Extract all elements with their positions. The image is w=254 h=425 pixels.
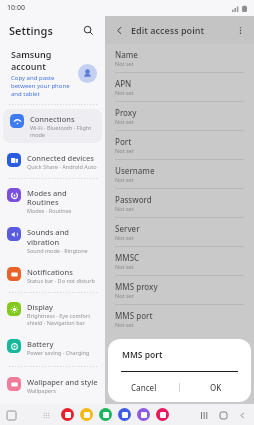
button[interactable]: Name xyxy=(105,44,254,72)
staticText: Not set xyxy=(115,118,134,125)
staticText: Not set xyxy=(115,263,134,270)
staticText: MMSC xyxy=(115,252,140,263)
button[interactable]: Cancel xyxy=(108,378,179,396)
button[interactable]: Back xyxy=(235,408,249,422)
button[interactable]: APN xyxy=(105,73,254,101)
button[interactable]: App xyxy=(118,408,131,421)
staticText: Status bar · Do not disturb xyxy=(27,277,96,284)
staticText: Copy and paste xyxy=(11,74,55,82)
staticText: Wallpaper and style xyxy=(27,377,98,387)
button[interactable]: Recent app xyxy=(5,409,17,421)
staticText: Password xyxy=(115,194,152,205)
staticText: Server xyxy=(115,223,140,234)
staticText: MMS proxy xyxy=(115,281,158,292)
button[interactable]: App xyxy=(99,408,112,421)
button[interactable]: App xyxy=(61,408,74,421)
staticText: Name xyxy=(115,49,138,60)
staticText: 10:00 xyxy=(7,3,25,13)
button[interactable]: MMSC xyxy=(105,247,254,275)
staticText: Power saving · Charging xyxy=(27,349,90,356)
button[interactable]: More options xyxy=(232,22,248,38)
staticText: Wi-Fi · Bluetooth · Flight xyxy=(30,124,92,131)
staticText: and tablet xyxy=(11,90,40,98)
button[interactable]: App xyxy=(137,408,150,421)
staticText: MMS port xyxy=(122,349,163,361)
staticText: Brightness · Eye comfort xyxy=(27,312,91,319)
staticText: vibration xyxy=(27,237,60,247)
staticText: Sound mode · Ringtone xyxy=(27,247,88,254)
staticText: OK xyxy=(210,382,222,393)
staticText: Connections xyxy=(30,114,75,124)
staticText: Modes and Routines xyxy=(27,188,100,207)
staticText: Username xyxy=(115,165,155,176)
staticText: MMS port xyxy=(115,310,153,321)
button[interactable]: App xyxy=(156,408,169,421)
button[interactable]: Proxy xyxy=(105,102,254,130)
staticText: Not set xyxy=(115,147,134,154)
staticText: Not set xyxy=(115,321,134,328)
button[interactable]: Username xyxy=(105,160,254,188)
button[interactable]: Sounds and xyxy=(0,222,105,259)
staticText: Modes · Routines xyxy=(27,207,72,214)
button[interactable]: Server xyxy=(105,218,254,246)
button[interactable]: Home xyxy=(216,408,230,422)
staticText: Edit access point xyxy=(131,24,205,36)
button[interactable]: Password xyxy=(105,189,254,217)
button[interactable]: Port xyxy=(105,131,254,159)
button[interactable]: Notifications xyxy=(0,262,105,289)
staticText: Battery xyxy=(27,339,54,349)
staticText: Wallpapers xyxy=(27,387,56,394)
button[interactable]: Wallpaper and style xyxy=(0,372,105,399)
button[interactable]: Battery xyxy=(0,334,105,361)
staticText: shield · Navigation bar xyxy=(27,319,85,326)
button[interactable]: MMS port xyxy=(105,305,254,333)
staticText: Display xyxy=(27,302,54,312)
button[interactable]: OK xyxy=(180,378,251,396)
staticText: Notifications xyxy=(27,267,73,277)
staticText: Port xyxy=(115,136,132,147)
button[interactable]: Recents xyxy=(197,408,211,422)
staticText: Not set xyxy=(115,234,134,241)
staticText: Sounds and xyxy=(27,227,69,237)
button[interactable]: Modes and Routines xyxy=(0,183,105,219)
button[interactable]: App xyxy=(80,408,93,421)
staticText: Not set xyxy=(115,176,134,183)
button[interactable]: MMS proxy xyxy=(105,276,254,304)
staticText: mode xyxy=(30,131,45,138)
staticText: Connected devices xyxy=(27,153,94,163)
staticText: Not set xyxy=(115,205,134,212)
staticText: Quick Share · Android Auto xyxy=(27,163,97,170)
button[interactable]: Display xyxy=(0,297,105,331)
staticText: Settings xyxy=(9,23,53,38)
button[interactable]: Search xyxy=(79,21,97,39)
button[interactable]: Connections xyxy=(3,109,102,143)
staticText: Not set xyxy=(115,60,134,67)
staticText: between your phone xyxy=(11,82,70,90)
button[interactable]: Samsung xyxy=(0,44,105,104)
staticText: Not set xyxy=(115,89,134,96)
staticText: Samsung xyxy=(11,48,52,60)
button[interactable]: Connected devices xyxy=(0,148,105,175)
staticText: Proxy xyxy=(115,107,137,118)
staticText: APN xyxy=(115,78,132,89)
button[interactable]: All apps xyxy=(40,409,52,421)
staticText: Cancel xyxy=(131,382,157,393)
staticText: Not set xyxy=(115,292,134,299)
staticText: account xyxy=(11,60,46,72)
button[interactable]: Back xyxy=(111,22,127,38)
